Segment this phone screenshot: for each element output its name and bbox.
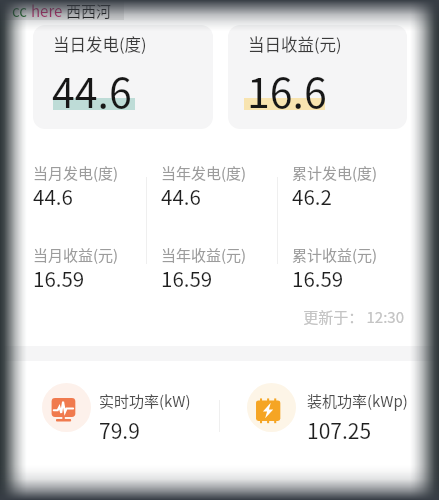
button[interactable]: 当月收益(元) [33, 244, 133, 298]
button[interactable]: 当月发电(度) [33, 162, 133, 216]
staticText: 46.2 [292, 181, 332, 211]
staticText: 更新于： 12:30 [20, 306, 404, 328]
button[interactable]: 累计发电(度) [292, 162, 392, 216]
button[interactable]: 当日收益(元) [228, 25, 407, 129]
staticText: 当月收益(元) [33, 244, 119, 266]
staticText: 当年收益(元) [161, 244, 247, 266]
staticText: 累计发电(度) [292, 162, 378, 184]
button[interactable]: 当年收益(元) [161, 244, 261, 298]
staticText: 当日收益(元) [248, 32, 342, 56]
staticText: 44.6 [52, 60, 132, 119]
staticText: 16.59 [33, 263, 85, 293]
staticText: cc [12, 0, 31, 20]
staticText: 装机功率(kWp) [307, 390, 408, 412]
staticText: 16.6 [247, 60, 327, 119]
button[interactable]: 累计收益(元) [292, 244, 392, 298]
button[interactable]: 当日发电(度) [33, 25, 213, 129]
button[interactable]: 当年发电(度) [161, 162, 261, 216]
staticText: here [31, 0, 66, 20]
staticText: 16.59 [292, 263, 344, 293]
staticText: 79.9 [99, 415, 140, 445]
staticText: 累计收益(元) [292, 244, 378, 266]
button[interactable]: Installed capacity [247, 383, 296, 432]
button[interactable]: Real-time power [42, 383, 91, 432]
staticText: 当日发电(度) [53, 32, 147, 56]
staticText: 实时功率(kW) [99, 390, 191, 412]
staticText: 44.6 [161, 181, 201, 211]
staticText: 当年发电(度) [161, 162, 247, 184]
staticText: 西西河 [66, 0, 112, 20]
staticText: 107.25 [307, 415, 372, 445]
staticText: 16.59 [161, 263, 213, 293]
staticText: 44.6 [33, 181, 73, 211]
staticText: 当月发电(度) [33, 162, 119, 184]
